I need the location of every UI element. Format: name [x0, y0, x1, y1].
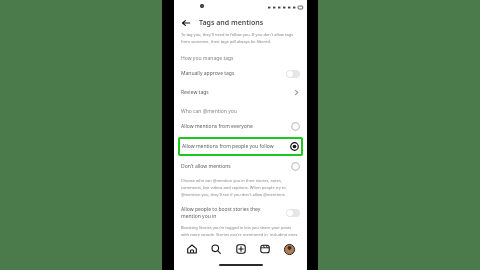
button[interactable]: Manually approve tags	[174, 64, 307, 83]
button[interactable]: Create	[232, 239, 250, 259]
staticText: Allow mentions from people you follow	[182, 143, 287, 150]
button[interactable]: Search	[207, 239, 225, 259]
button[interactable]: Toggle	[286, 70, 300, 78]
button[interactable]: Allow people to boost stories they menti…	[174, 203, 307, 222]
button[interactable]: Home	[183, 239, 201, 259]
staticText: Tags and mentions	[199, 18, 264, 28]
staticText: Boosting Stories you're tagged in lets y…	[181, 225, 299, 236]
button[interactable]: Reels	[256, 239, 274, 259]
staticText: Who can @mention you	[181, 108, 237, 115]
staticText: Manually approve tags	[181, 70, 283, 77]
button[interactable]: Review tags	[174, 83, 307, 102]
staticText: Don't allow mentions	[181, 163, 288, 170]
button[interactable]: Toggle	[286, 209, 300, 217]
staticText: To tag you, they'll need to follow you. …	[181, 32, 299, 44]
staticText: Review tags	[181, 89, 290, 96]
staticText: Allow people to boost stories they menti…	[181, 206, 283, 220]
button[interactable]: Allow mentions from everyone	[174, 117, 307, 136]
staticText: How you manage tags	[181, 55, 234, 62]
button[interactable]: Profile	[280, 239, 298, 259]
button[interactable]: Allow mentions from people you follow	[178, 137, 303, 156]
button[interactable]: Don't allow mentions	[174, 157, 307, 176]
button[interactable]: Back	[180, 17, 191, 28]
staticText: Allow mentions from everyone	[181, 123, 288, 130]
staticText: Choose who can @mention you in their sto…	[181, 178, 299, 197]
